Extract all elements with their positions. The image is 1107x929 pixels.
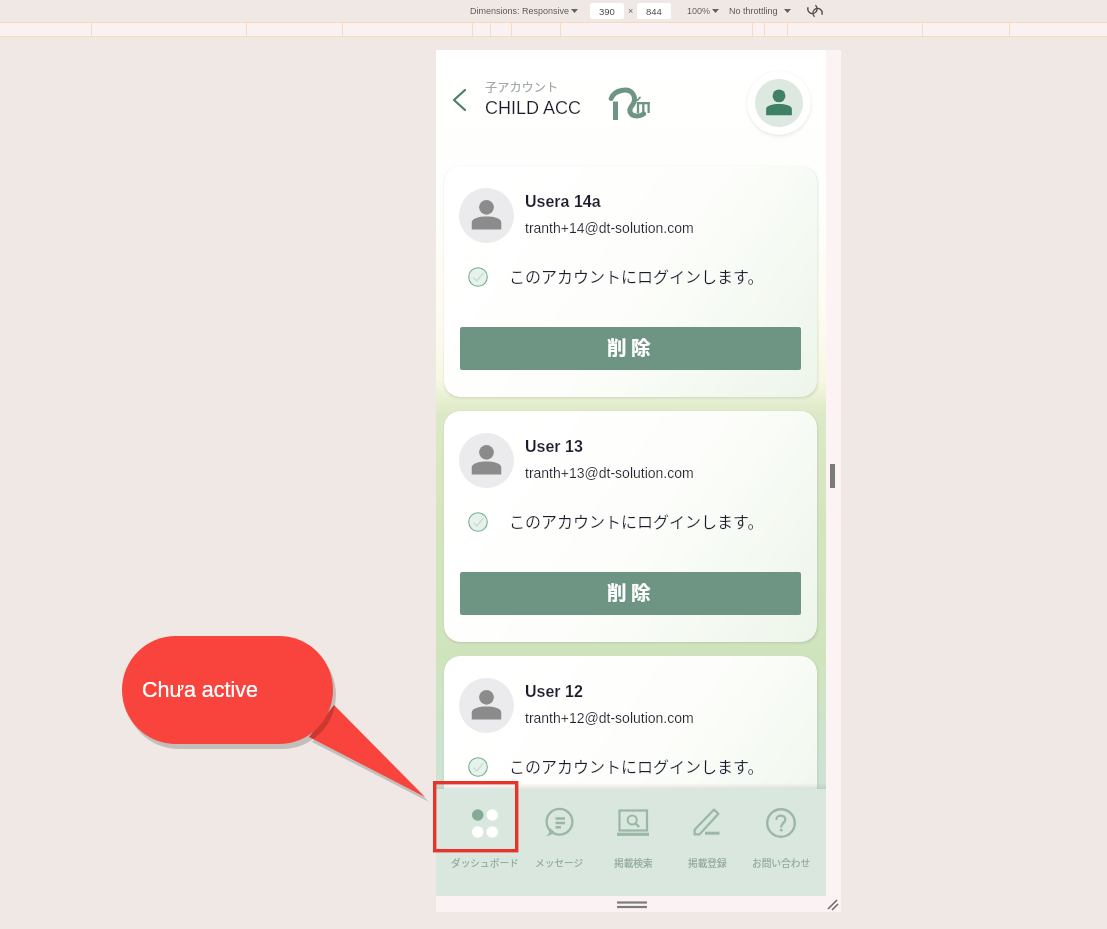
- button[interactable]: メッセージ: [522, 789, 596, 896]
- button[interactable]: 掲載登録: [670, 789, 744, 896]
- staticText: メッセージ: [535, 856, 584, 870]
- staticText: 削 除: [607, 332, 651, 360]
- staticText: No throttling: [729, 6, 778, 16]
- staticText: 子アカウント: [485, 78, 559, 96]
- staticText: 844: [646, 6, 662, 17]
- staticText: このアカウントにログインします。: [509, 264, 764, 287]
- staticText: 100%: [687, 6, 711, 16]
- staticText: 削 除: [607, 822, 651, 850]
- staticText: ダッシュボード: [451, 856, 519, 870]
- button[interactable]: ダッシュボード: [448, 789, 522, 896]
- staticText: User 13: [525, 438, 583, 456]
- button[interactable]: 削 除: [460, 327, 801, 370]
- staticText: Dimensions: Responsive: [470, 6, 570, 16]
- staticText: 390: [599, 6, 615, 17]
- button[interactable]: お問い合わせ: [744, 789, 818, 896]
- staticText: Usera 14a: [525, 193, 601, 211]
- staticText: このアカウントにログインします。: [509, 754, 764, 777]
- staticText: ×: [628, 6, 634, 16]
- staticText: Chưa active: [142, 678, 258, 702]
- staticText: このアカウントにログインします。: [509, 509, 764, 532]
- button[interactable]: User 12: [444, 656, 817, 887]
- button[interactable]: Usera 14a: [444, 166, 817, 397]
- staticText: 削 除: [607, 577, 651, 605]
- staticText: CHILD ACC: [485, 98, 582, 118]
- button[interactable]: Account: [747, 71, 811, 135]
- staticText: tranth+12@dt-solution.com: [525, 710, 694, 726]
- button[interactable]: User 13: [444, 411, 817, 642]
- button[interactable]: 削 除: [460, 817, 801, 860]
- staticText: 掲載検索: [614, 856, 653, 870]
- button[interactable]: Back: [446, 82, 474, 118]
- button[interactable]: 掲載検索: [596, 789, 670, 896]
- staticText: tranth+13@dt-solution.com: [525, 465, 694, 481]
- staticText: お問い合わせ: [752, 856, 811, 870]
- staticText: User 12: [525, 683, 583, 701]
- staticText: 掲載登録: [688, 856, 727, 870]
- staticText: tranth+14@dt-solution.com: [525, 220, 694, 236]
- button[interactable]: 削 除: [460, 572, 801, 615]
